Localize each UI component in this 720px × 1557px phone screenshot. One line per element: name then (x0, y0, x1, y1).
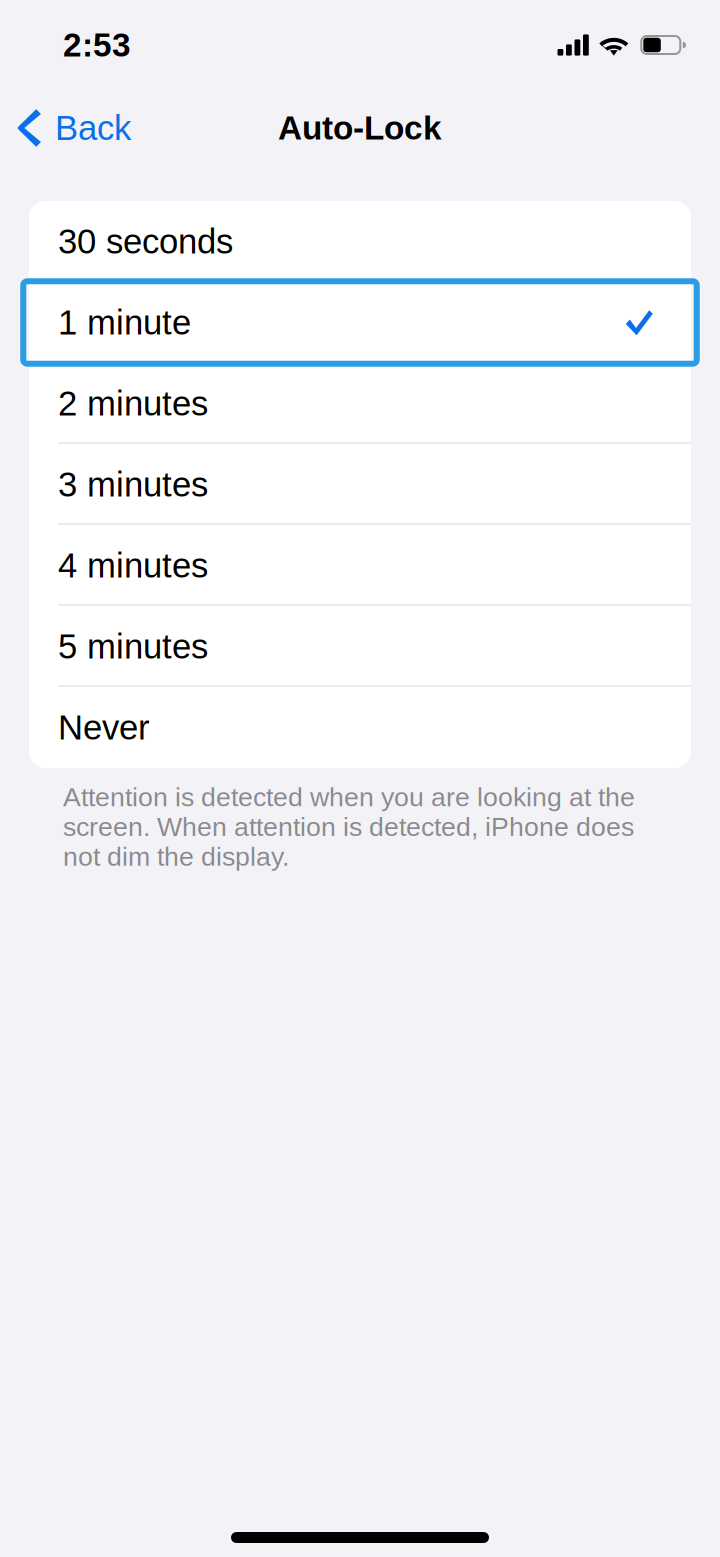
button[interactable]: Back (0, 100, 151, 156)
button[interactable]: 5 minutes (29, 606, 691, 687)
staticText: 2 minutes (58, 384, 208, 423)
button[interactable]: Never (29, 687, 691, 768)
staticText: 5 minutes (58, 627, 208, 666)
button[interactable]: 2 minutes (29, 363, 691, 444)
button[interactable]: 3 minutes (29, 444, 691, 525)
button[interactable]: 1 minute (29, 282, 691, 363)
button[interactable]: 30 seconds (29, 201, 691, 282)
staticText: Auto-Lock (278, 109, 442, 147)
staticText: 3 minutes (58, 465, 208, 504)
staticText: Never (58, 708, 150, 747)
staticText: Back (55, 109, 131, 147)
staticText: 4 minutes (58, 546, 208, 585)
staticText: 1 minute (58, 303, 191, 342)
staticText: Attention is detected when you are looki… (63, 782, 635, 871)
staticText: 2:53 (63, 26, 131, 64)
staticText: 30 seconds (58, 222, 233, 261)
button[interactable]: 4 minutes (29, 525, 691, 606)
